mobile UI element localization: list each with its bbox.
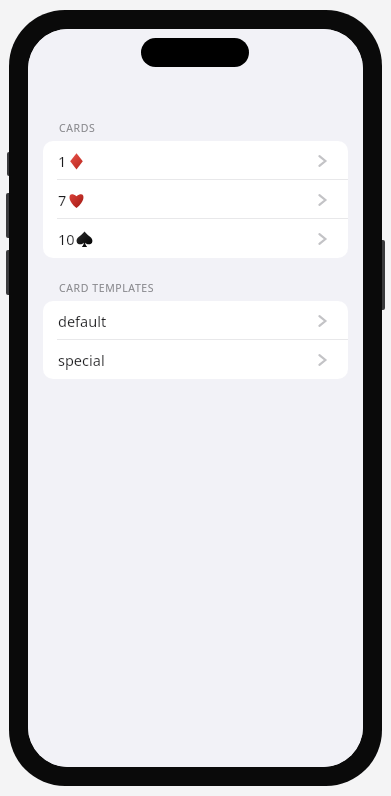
staticText: CARD TEMPLATES	[59, 281, 155, 295]
staticText: 7	[58, 190, 67, 210]
button[interactable]: special	[43, 340, 348, 379]
button[interactable]: default	[43, 301, 348, 340]
other: Open	[317, 192, 328, 208]
button[interactable]: 10	[43, 219, 348, 258]
other: Open	[317, 153, 328, 169]
other: Open	[317, 231, 328, 247]
staticText: default	[58, 311, 107, 331]
staticText: CARDS	[59, 121, 96, 135]
staticText: 1	[58, 151, 67, 171]
other: Open	[317, 313, 328, 329]
button[interactable]: 1	[43, 141, 348, 180]
staticText: special	[58, 350, 105, 370]
other: Open	[317, 352, 328, 368]
staticText: 10	[58, 229, 75, 249]
button[interactable]: 7	[43, 180, 348, 219]
